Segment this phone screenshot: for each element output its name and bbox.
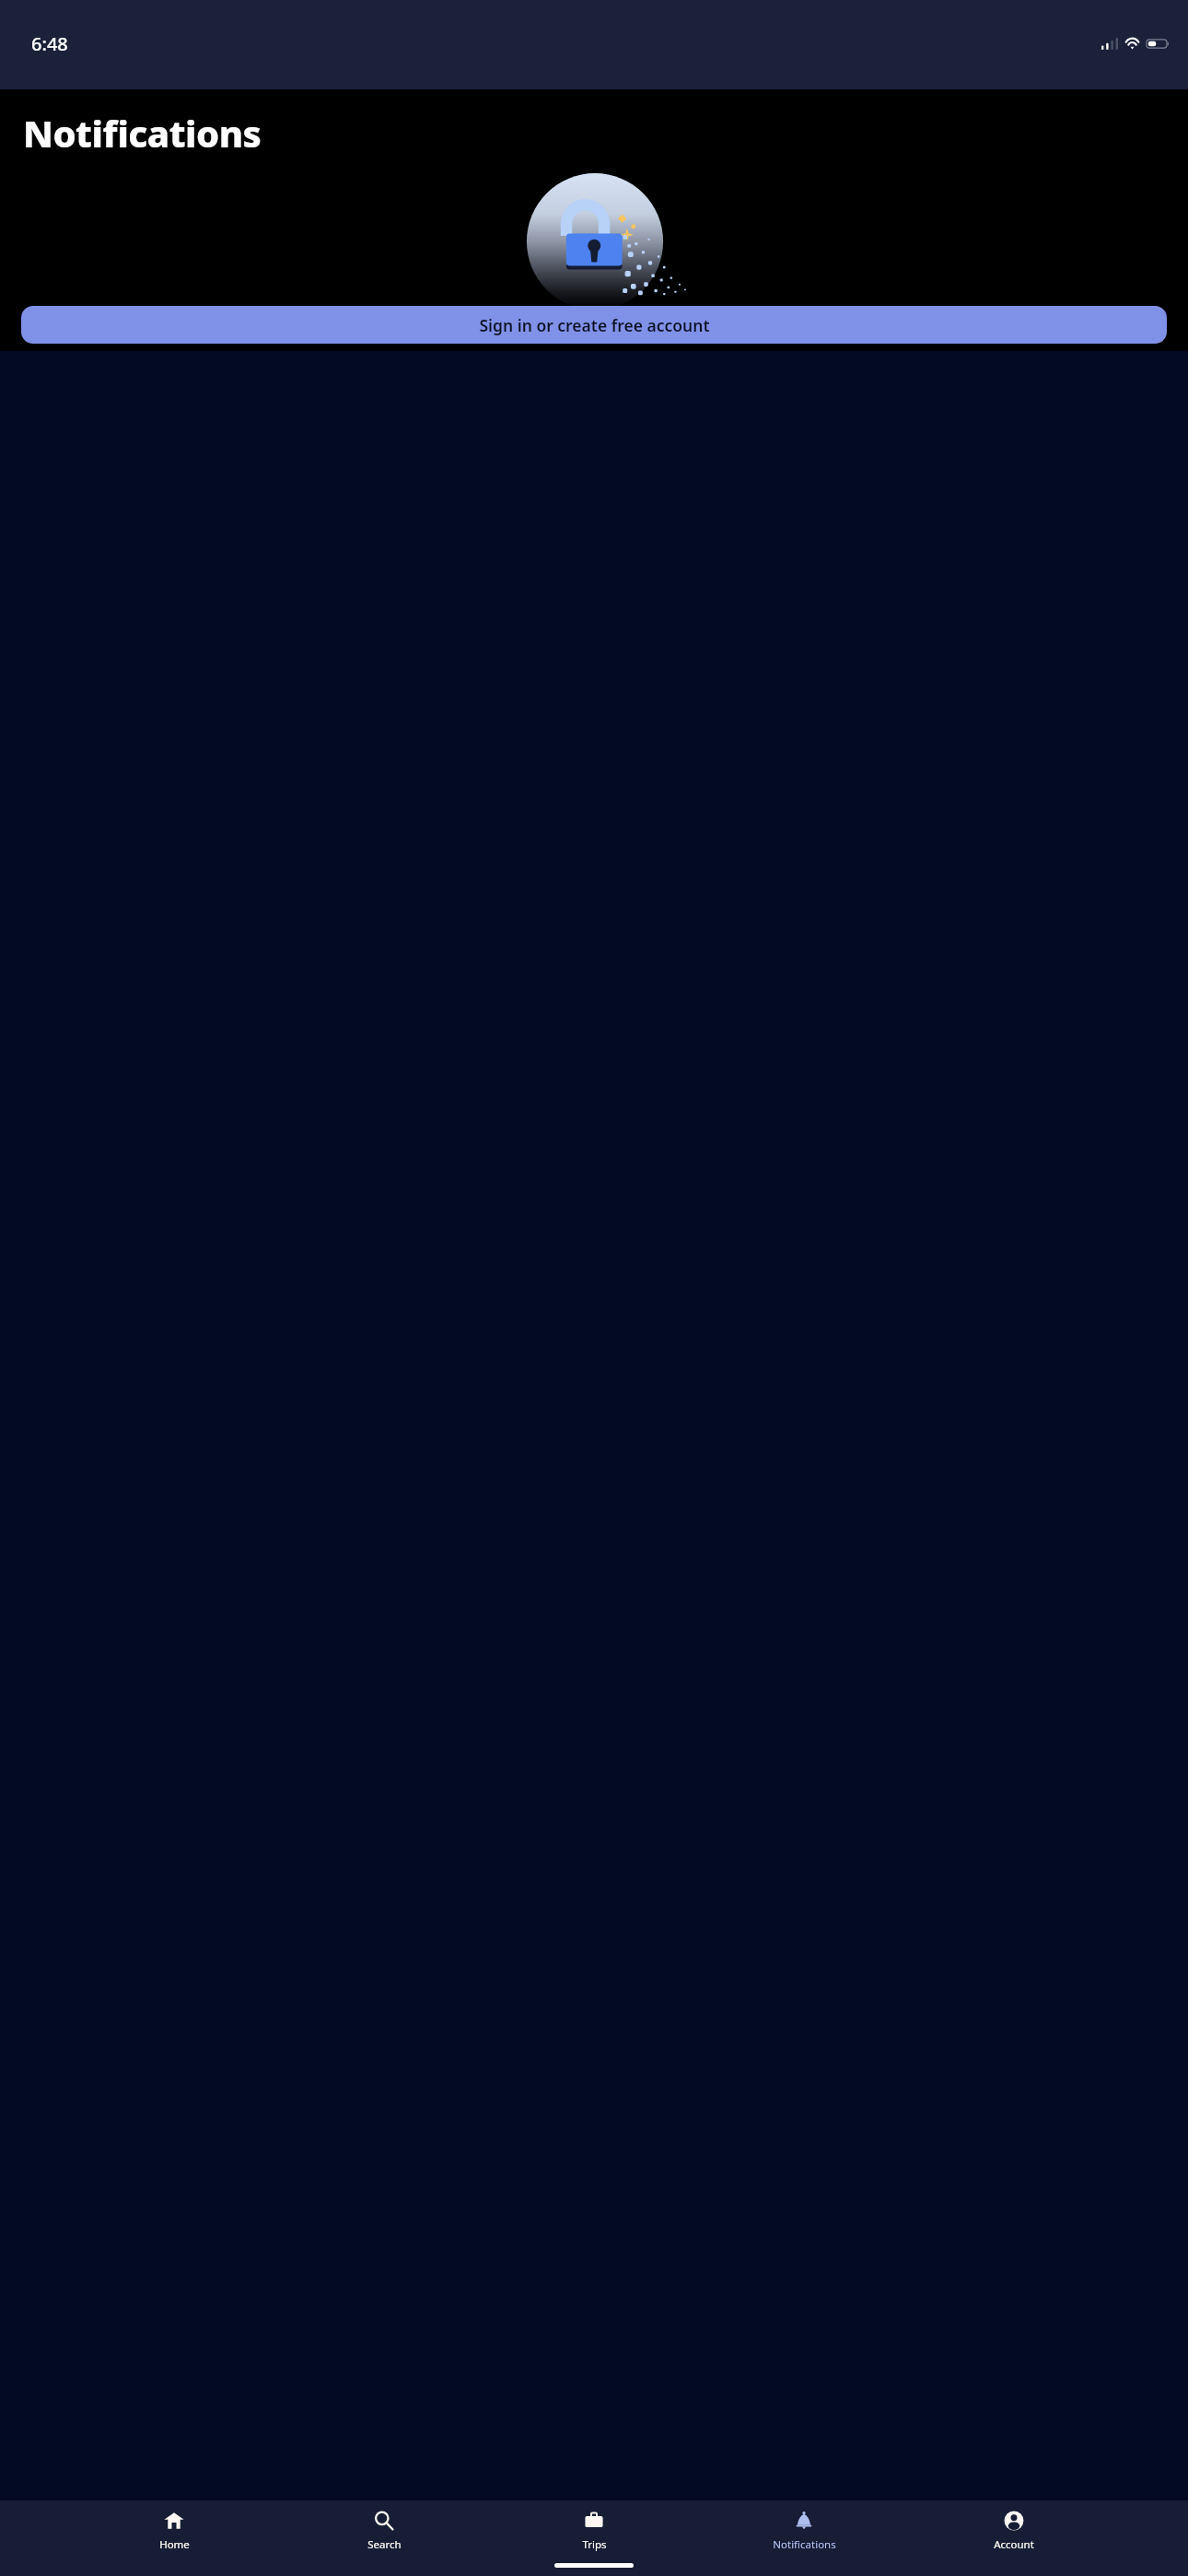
button[interactable]: Search [348, 2509, 420, 2554]
other: Home [164, 2511, 184, 2531]
button[interactable]: Sign in or create free account [21, 306, 1167, 344]
staticText: Home [159, 2537, 190, 2552]
button[interactable]: Home [138, 2509, 210, 2554]
other: Notifications [794, 2511, 814, 2531]
other: Trips [584, 2511, 604, 2531]
staticText: Account [994, 2537, 1034, 2552]
button[interactable]: Account [978, 2509, 1050, 2554]
staticText: Trips [582, 2537, 607, 2552]
staticText: Sign in or create free account [479, 314, 710, 336]
other: Account [1004, 2511, 1024, 2531]
staticText: Notifications [23, 108, 262, 158]
other: Search [374, 2511, 394, 2531]
staticText: 6:48 [31, 31, 68, 56]
button[interactable]: Trips [558, 2509, 630, 2554]
staticText: Notifications [773, 2537, 836, 2552]
button[interactable]: Notifications [768, 2509, 840, 2554]
staticText: Search [367, 2537, 402, 2552]
